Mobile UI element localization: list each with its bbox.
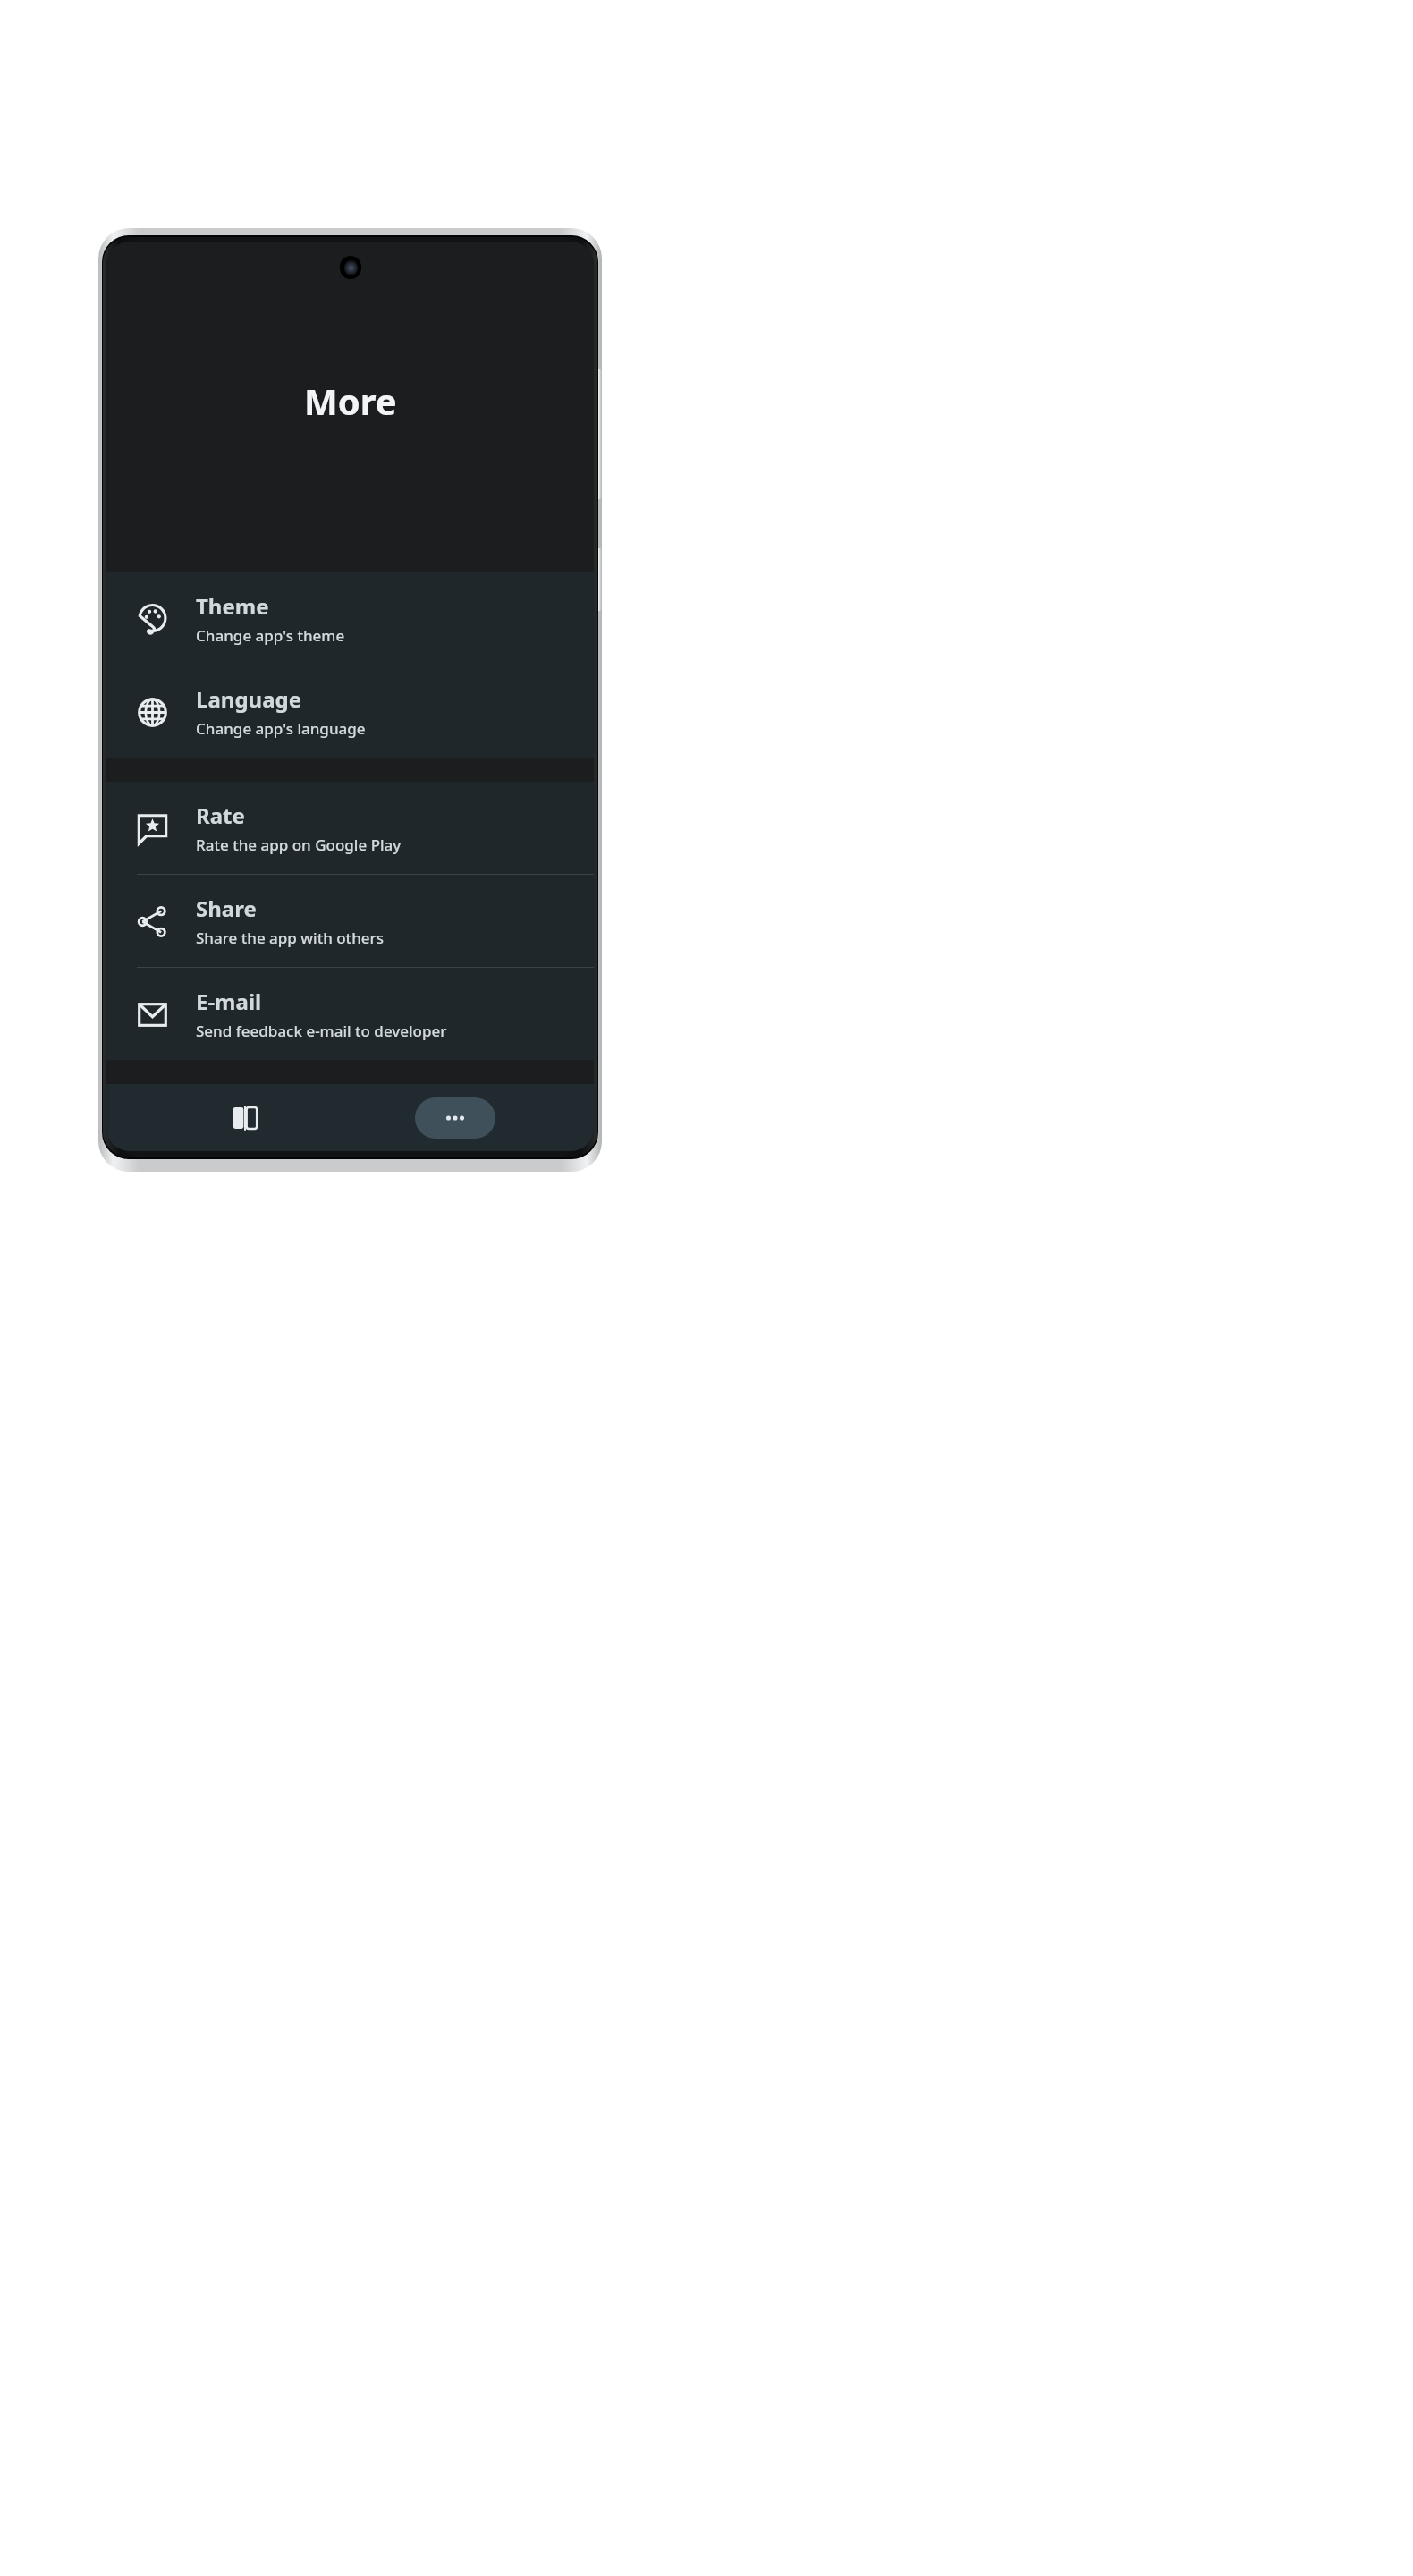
button[interactable]: Rate: [106, 782, 594, 874]
staticText: E-mail: [196, 987, 262, 1016]
staticText: Send feedback e-mail to developer: [196, 1021, 447, 1041]
staticText: More: [304, 377, 397, 425]
other: Functions: [216, 1097, 274, 1139]
other: More: [415, 1097, 495, 1139]
button[interactable]: More: [384, 1084, 527, 1151]
staticText: Share: [196, 894, 257, 923]
staticText: Language: [196, 684, 302, 714]
staticText: Theme: [196, 591, 269, 621]
button[interactable]: Language: [106, 665, 594, 758]
button[interactable]: Share: [106, 875, 594, 967]
button[interactable]: Functions: [173, 1084, 317, 1151]
button[interactable]: E-mail: [106, 968, 594, 1060]
staticText: Change app's language: [196, 718, 366, 739]
button[interactable]: Theme: [106, 572, 594, 665]
staticText: Rate: [196, 801, 245, 830]
staticText: Rate the app on Google Play: [196, 835, 402, 855]
staticText: Share the app with others: [196, 928, 385, 948]
staticText: Change app's theme: [196, 625, 345, 646]
